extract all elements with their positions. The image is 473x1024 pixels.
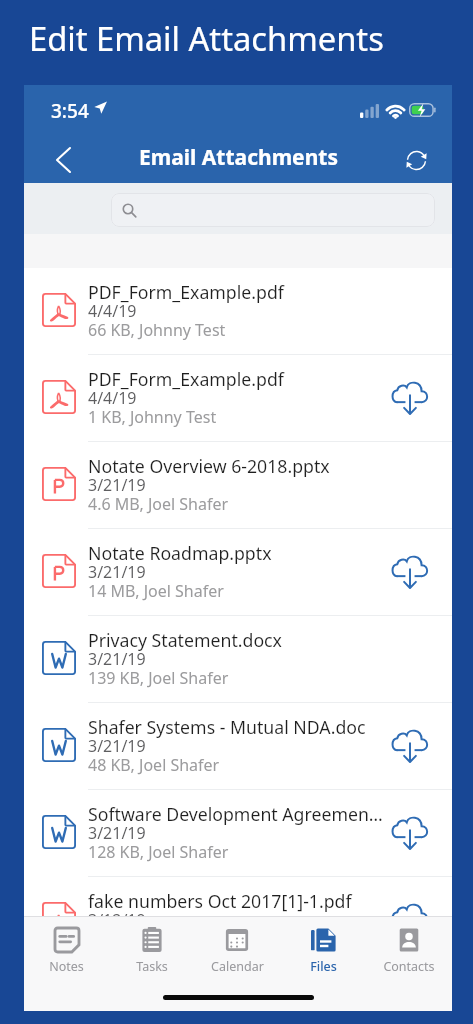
button[interactable]: Download [387,723,433,769]
staticText: Email Attachments [139,143,338,172]
staticText: fake numbers Oct 2017[1]-1.pdf [88,889,386,913]
staticText: Contacts [383,958,435,975]
staticText: 14 MB, Joel Shafer [88,580,224,602]
button[interactable] [111,193,435,227]
button[interactable]: PDF_Form_Example.pdf [24,268,452,355]
staticText: Notes [49,958,84,975]
button[interactable]: Download [387,897,433,943]
button[interactable]: Download [387,549,433,595]
button[interactable]: Contacts [366,917,452,979]
staticText: 3/21/19 [88,735,146,757]
staticText: Calendar [211,958,264,975]
button[interactable]: fake numbers Oct 2017[1]-1.pdf [24,877,452,964]
staticText: 3/21/19 [88,648,146,670]
staticText: Privacy Statement.docx [88,628,386,652]
staticText: Notate Roadmap.pptx [88,541,386,565]
button[interactable]: Tasks [109,917,194,979]
button[interactable]: Calendar [194,917,280,979]
button[interactable]: Shafer Systems - Mutual NDA.doc [24,703,452,790]
staticText: Files [310,958,337,975]
staticText: Shafer Systems - Mutual NDA.doc [88,715,386,739]
staticText: 48 KB, Joel Shafer [88,754,220,776]
staticText: Edit Email Attachments [29,16,384,61]
staticText: PDF_Form_Example.pdf [88,367,386,391]
button[interactable]: Files [280,917,366,979]
button[interactable]: PDF_Form_Example.pdf [24,355,452,442]
staticText: 3/12/19 [88,909,146,931]
button[interactable]: Download [387,810,433,856]
staticText: 3:54 [51,98,89,124]
staticText: PDF_Form_Example.pdf [88,280,386,304]
staticText: 3/21/19 [88,474,146,496]
staticText: 4/4/19 [88,387,137,409]
staticText: 66 KB, Johnny Test [88,319,226,341]
staticText: 1 KB, Johnny Test [88,406,217,428]
staticText: 128 KB, Joel Shafer [88,841,229,863]
button[interactable]: Refresh [394,138,438,182]
staticText: 3/21/19 [88,822,146,844]
staticText: 139 KB, Joel Shafer [88,667,229,689]
staticText: Tasks [136,958,168,975]
button[interactable]: Notate Roadmap.pptx [24,529,452,616]
button[interactable]: Download [387,375,433,421]
button[interactable]: Notes [24,917,109,979]
button[interactable]: Privacy Statement.docx [24,616,452,703]
staticText: 4/4/19 [88,300,137,322]
button[interactable]: Notate Overview 6-2018.pptx [24,442,452,529]
staticText: 3/21/19 [88,561,146,583]
staticText: Notate Overview 6-2018.pptx [88,454,386,478]
staticText: 4.6 MB, Joel Shafer [88,493,229,515]
button[interactable]: Software Development Agreement.... [24,790,452,877]
button[interactable]: Back [41,138,85,182]
staticText: Software Development Agreement.... [88,802,386,826]
